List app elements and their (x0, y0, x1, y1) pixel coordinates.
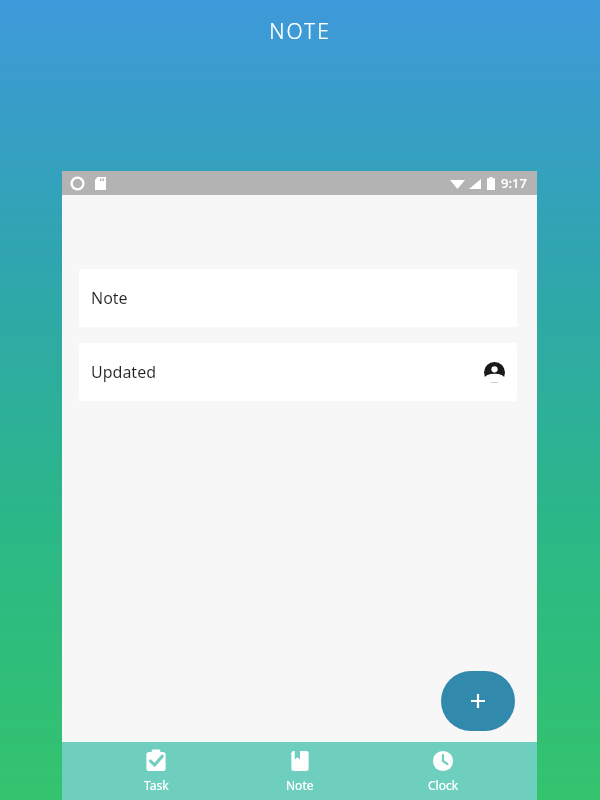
staticText: Task (144, 777, 169, 793)
staticText: Clock (428, 777, 459, 793)
button[interactable]: Task (106, 742, 206, 800)
staticText: 9:17 (501, 174, 527, 192)
button[interactable]: Clock (393, 742, 493, 800)
button[interactable]: Add note (441, 671, 515, 731)
staticText: Note (286, 777, 314, 793)
button[interactable]: Updated (79, 343, 517, 401)
staticText: Note (91, 287, 128, 309)
staticText: Updated (91, 361, 156, 383)
button[interactable]: Note (250, 742, 350, 800)
staticText: NOTE (0, 17, 600, 46)
button[interactable]: Note (79, 269, 517, 327)
